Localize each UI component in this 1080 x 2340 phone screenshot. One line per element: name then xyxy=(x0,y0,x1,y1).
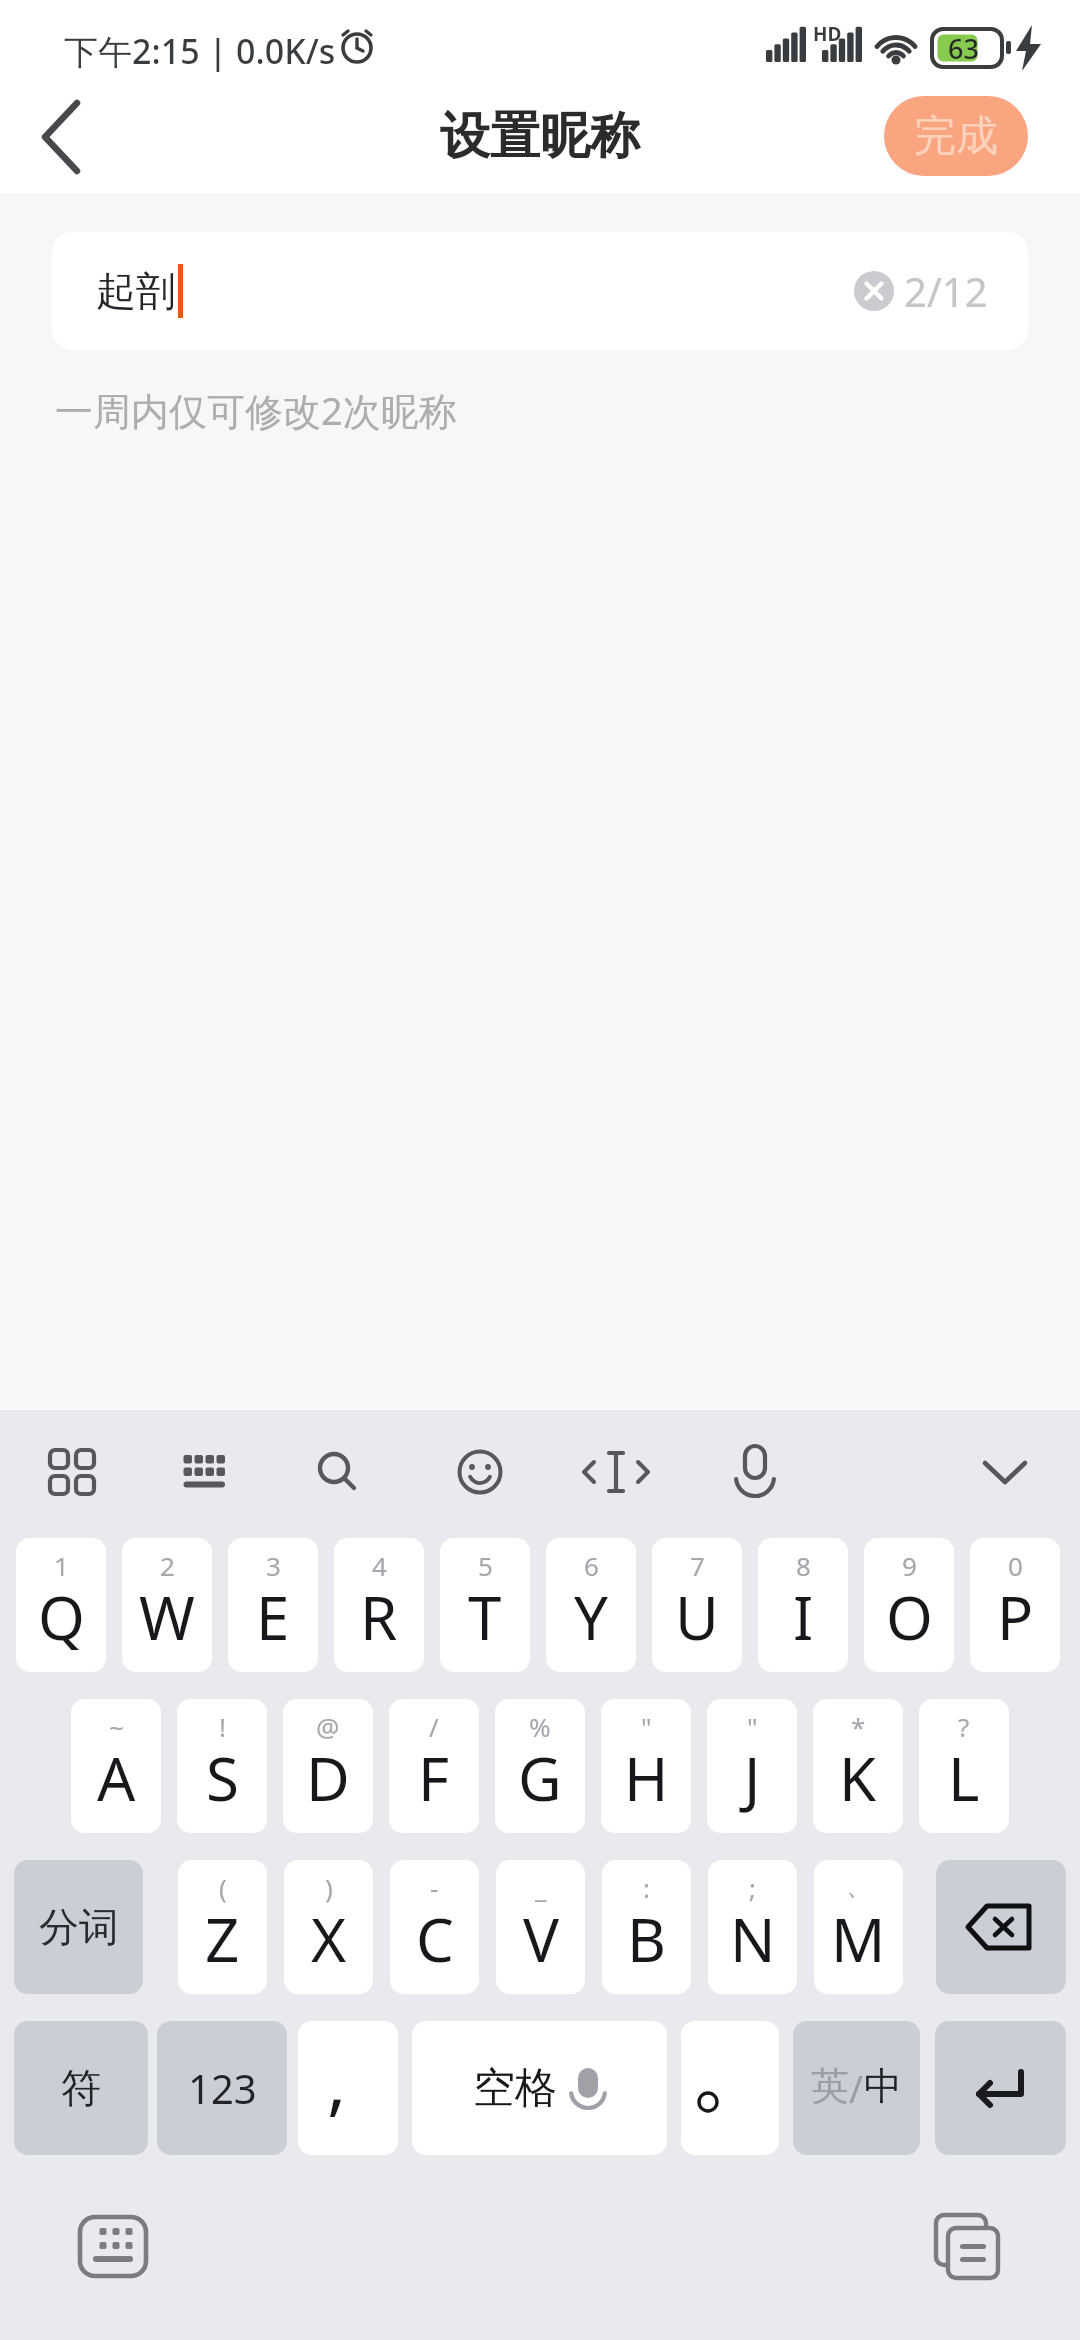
button[interactable]: 、 xyxy=(814,1860,903,1994)
staticText: 6 xyxy=(584,1548,599,1583)
button[interactable]: 起剖 xyxy=(52,232,1028,350)
staticText: K xyxy=(839,1737,877,1819)
button[interactable] xyxy=(936,1860,1066,1994)
staticText: 1 xyxy=(54,1548,69,1583)
button[interactable] xyxy=(27,1427,117,1517)
staticText: - xyxy=(430,1870,439,1905)
button[interactable]: ? xyxy=(919,1699,1009,1833)
button[interactable]: - xyxy=(390,1860,479,1994)
button[interactable]: " xyxy=(601,1699,691,1833)
button[interactable]: @ xyxy=(283,1699,373,1833)
button[interactable]: 7 xyxy=(652,1538,742,1672)
button[interactable]: % xyxy=(495,1699,585,1833)
staticText: HD xyxy=(813,21,842,47)
staticText: 一周内仅可修改2次昵称 xyxy=(55,384,457,436)
staticText: 2 xyxy=(160,1548,175,1583)
staticText: 123 xyxy=(188,2061,257,2115)
button[interactable]: ! xyxy=(177,1699,267,1833)
staticText: M xyxy=(831,1898,886,1980)
button[interactable]: 英 xyxy=(793,2021,920,2155)
staticText: 2/12 xyxy=(904,264,988,318)
button[interactable] xyxy=(922,2204,1012,2290)
staticText: L xyxy=(948,1737,980,1819)
button[interactable]: * xyxy=(813,1699,903,1833)
staticText: H xyxy=(624,1737,669,1819)
staticText: F xyxy=(418,1737,450,1819)
button[interactable] xyxy=(935,2021,1066,2155)
staticText: V xyxy=(523,1898,559,1980)
button[interactable] xyxy=(68,2204,158,2290)
staticText: I xyxy=(793,1576,814,1658)
button[interactable]: 1 xyxy=(16,1538,106,1672)
staticText: 7 xyxy=(690,1548,705,1583)
staticText: ( xyxy=(219,1870,227,1905)
button[interactable]: 6 xyxy=(546,1538,636,1672)
staticText: R xyxy=(360,1576,398,1658)
button[interactable]: 空格 xyxy=(412,2021,667,2155)
staticText: A xyxy=(97,1737,136,1819)
staticText: 3 xyxy=(266,1548,281,1583)
button[interactable]: 完成 xyxy=(884,96,1028,176)
staticText: ~ xyxy=(109,1709,124,1744)
button[interactable]: 9 xyxy=(864,1538,954,1672)
staticText: B xyxy=(627,1898,666,1980)
button[interactable]: 8 xyxy=(758,1538,848,1672)
staticText: 4 xyxy=(372,1548,387,1583)
staticText: G xyxy=(518,1737,562,1819)
staticText: S xyxy=(206,1737,239,1819)
button[interactable]: " xyxy=(707,1699,797,1833)
staticText: 5 xyxy=(478,1548,493,1583)
staticText: 9 xyxy=(902,1548,917,1583)
button[interactable] xyxy=(28,95,102,179)
staticText: U xyxy=(675,1576,719,1658)
button[interactable]: 分词 xyxy=(14,1860,143,1994)
staticText: 、 xyxy=(846,1870,872,1903)
staticText: " xyxy=(747,1709,758,1744)
staticText: / xyxy=(429,1709,439,1744)
staticText: Q xyxy=(38,1576,85,1658)
button[interactable]: _ xyxy=(496,1860,585,1994)
staticText: 设置昵称 xyxy=(440,105,640,168)
button[interactable]: 3 xyxy=(228,1538,318,1672)
staticText: P xyxy=(997,1576,1034,1658)
button[interactable]: 符 xyxy=(14,2021,148,2155)
button[interactable] xyxy=(854,271,894,311)
button[interactable]: ~ xyxy=(71,1699,161,1833)
button[interactable]: / xyxy=(389,1699,479,1833)
button[interactable]: , xyxy=(298,2021,398,2155)
button[interactable]: ; xyxy=(708,1860,797,1994)
staticText: W xyxy=(139,1576,195,1658)
staticText: O xyxy=(886,1576,933,1658)
button[interactable]: : xyxy=(602,1860,691,1994)
staticText: / xyxy=(849,2062,864,2114)
button[interactable] xyxy=(681,2021,779,2155)
button[interactable] xyxy=(293,1427,383,1517)
staticText: Z xyxy=(205,1898,240,1980)
staticText: N xyxy=(730,1898,776,1980)
staticText: ? xyxy=(958,1709,970,1744)
button[interactable]: ) xyxy=(284,1860,373,1994)
button[interactable]: 2 xyxy=(122,1538,212,1672)
button[interactable] xyxy=(435,1427,525,1517)
button[interactable]: 4 xyxy=(334,1538,424,1672)
staticText: 中 xyxy=(864,2062,902,2110)
staticText: 完成 xyxy=(914,110,998,163)
staticText: 63 xyxy=(948,30,979,67)
button[interactable]: 0 xyxy=(970,1538,1060,1672)
button[interactable] xyxy=(159,1427,249,1517)
button[interactable] xyxy=(960,1427,1050,1517)
staticText: E xyxy=(256,1576,290,1658)
button[interactable] xyxy=(710,1427,800,1517)
button[interactable] xyxy=(571,1427,661,1517)
staticText: * xyxy=(851,1709,866,1744)
staticText: 空格 xyxy=(473,2062,557,2115)
staticText: 0 xyxy=(1008,1548,1023,1583)
button[interactable]: ( xyxy=(178,1860,267,1994)
button[interactable]: 5 xyxy=(440,1538,530,1672)
staticText: ; xyxy=(749,1870,756,1905)
staticText: ! xyxy=(219,1709,226,1744)
staticText: 分词 xyxy=(39,1902,119,1952)
staticText: 8 xyxy=(796,1548,811,1583)
staticText: " xyxy=(641,1709,652,1744)
button[interactable]: 123 xyxy=(157,2021,287,2155)
